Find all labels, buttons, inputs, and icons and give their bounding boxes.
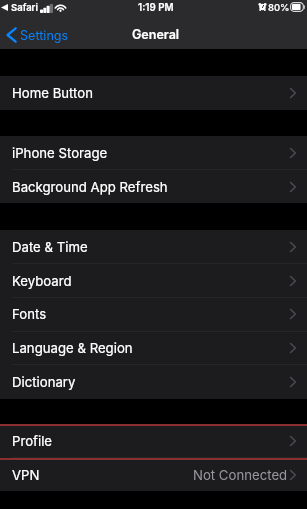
button[interactable]: Settings <box>0 27 77 43</box>
button[interactable]: VPN <box>0 458 307 492</box>
button[interactable]: Profile <box>0 424 307 458</box>
button[interactable]: iPhone Storage <box>0 136 307 170</box>
staticText: VPN <box>12 467 40 483</box>
button[interactable]: Home Button <box>0 76 307 110</box>
button[interactable]: Date & Time <box>0 230 307 264</box>
staticText: Date & Time <box>12 239 88 255</box>
staticText: General <box>132 27 180 42</box>
staticText: 80% <box>268 2 290 13</box>
button[interactable]: Background App Refresh <box>0 170 307 204</box>
staticText: Background App Refresh <box>12 179 168 195</box>
staticText: Safari <box>11 2 38 13</box>
staticText: Dictionary <box>12 374 76 390</box>
button[interactable]: Fonts <box>0 297 307 331</box>
button[interactable]: Language & Region <box>0 331 307 365</box>
staticText: Settings <box>20 28 69 43</box>
button[interactable]: Dictionary <box>0 365 307 399</box>
staticText: Profile <box>12 433 53 449</box>
staticText: Not Connected <box>193 467 288 483</box>
staticText: Keyboard <box>12 273 72 289</box>
staticText: iPhone Storage <box>12 145 108 161</box>
staticText: Language & Region <box>12 340 133 356</box>
staticText: 1:19 PM <box>138 2 174 14</box>
staticText: Fonts <box>12 306 47 322</box>
staticText: Home Button <box>12 85 93 101</box>
button[interactable]: Keyboard <box>0 264 307 298</box>
